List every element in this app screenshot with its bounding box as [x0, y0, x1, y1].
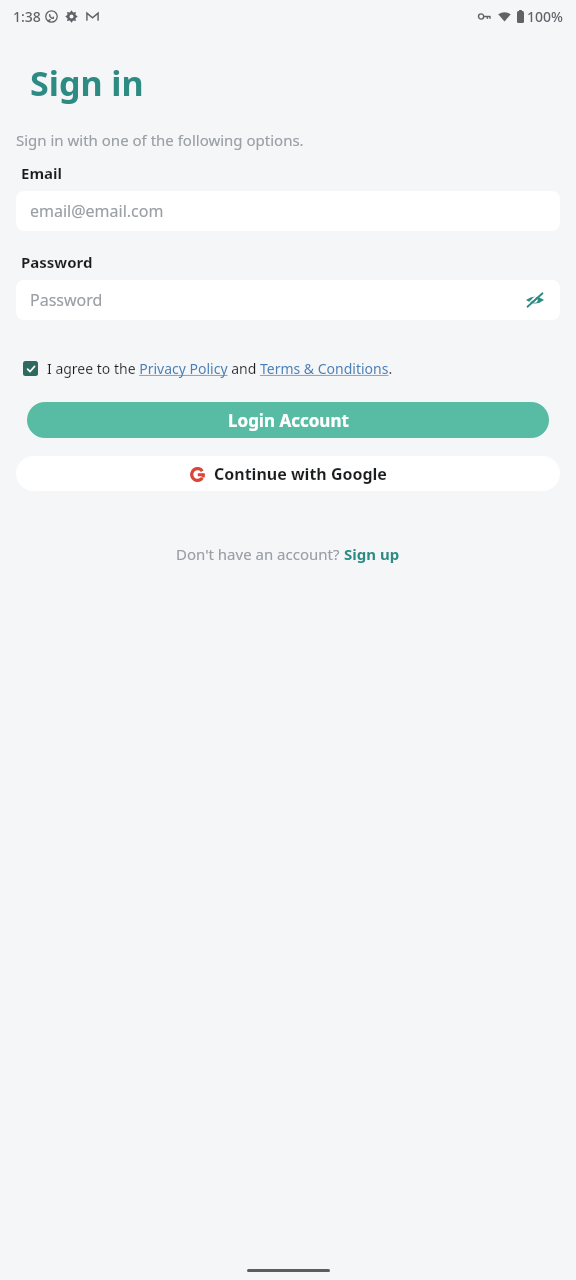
staticText: Login Account: [228, 409, 349, 432]
button[interactable]: Don't have an account?: [176, 544, 400, 564]
staticText: Sign up: [344, 544, 400, 564]
staticText: Password: [21, 252, 93, 272]
staticText: Don't have an account?: [176, 544, 344, 564]
button[interactable]: email@email.com: [16, 191, 560, 231]
staticText: Sign in: [30, 60, 144, 106]
staticText: 100%: [527, 7, 563, 26]
button[interactable]: Login Account: [27, 402, 549, 438]
staticText: email@email.com: [30, 200, 164, 222]
button[interactable]: Password: [16, 280, 560, 320]
staticText: Password: [30, 289, 103, 311]
button[interactable]: Toggle password visibility: [524, 289, 546, 311]
button[interactable]: Continue with Google: [16, 456, 560, 491]
staticText: I agree to the Privacy Policy and Terms …: [47, 359, 393, 378]
staticText: Email: [21, 163, 62, 183]
staticText: 1:38: [13, 7, 41, 26]
staticText: Continue with Google: [214, 463, 387, 485]
button[interactable]: I agree to the Privacy Policy and Terms …: [16, 359, 560, 378]
staticText: Sign in with one of the following option…: [16, 130, 304, 150]
